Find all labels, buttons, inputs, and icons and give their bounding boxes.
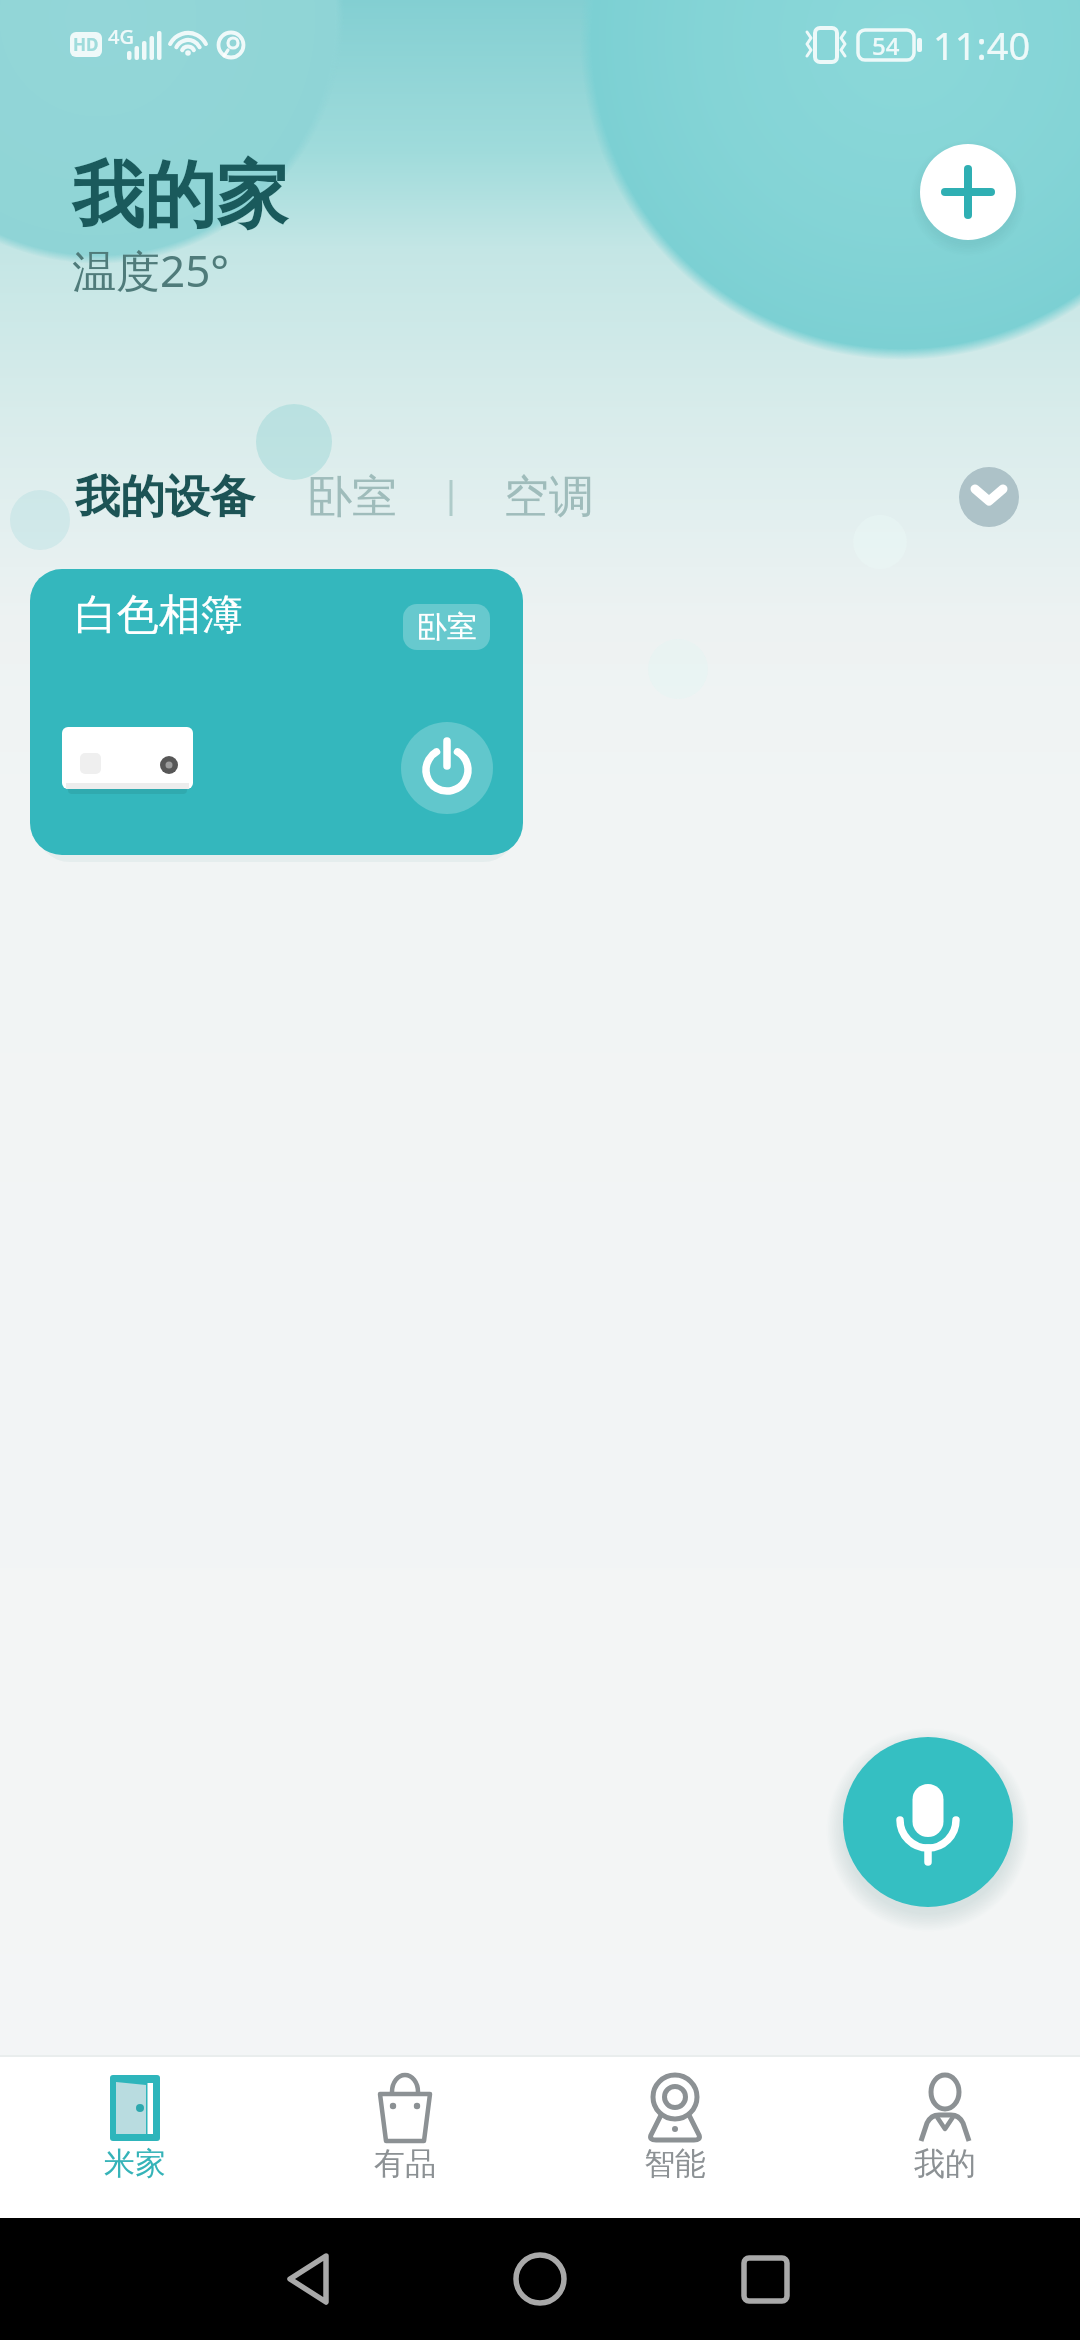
button[interactable]: [959, 467, 1019, 527]
button[interactable]: 空调: [493, 462, 603, 532]
button[interactable]: [440, 2218, 640, 2340]
staticText: 米家: [104, 2144, 166, 2183]
button[interactable]: 我的: [810, 2055, 1080, 2218]
staticText: 我的家: [72, 151, 288, 242]
button[interactable]: 米家: [0, 2055, 270, 2218]
button[interactable]: 智能: [540, 2055, 810, 2218]
button[interactable]: 白色相簿: [30, 569, 523, 855]
staticText: 卧室: [417, 608, 477, 646]
button[interactable]: 有品: [270, 2055, 540, 2218]
button[interactable]: [665, 2218, 865, 2340]
staticText: 54: [872, 29, 900, 62]
button[interactable]: 卧室: [296, 462, 406, 532]
staticText: 温度25°: [72, 240, 230, 300]
staticText: 白色相簿: [75, 589, 243, 642]
staticText: 卧室: [307, 469, 397, 526]
staticText: HD: [73, 33, 99, 56]
button[interactable]: [208, 2218, 408, 2340]
staticText: 4G: [108, 23, 134, 50]
button[interactable]: [920, 144, 1016, 240]
button[interactable]: [843, 1737, 1013, 1907]
staticText: 11:40: [933, 19, 1031, 71]
button[interactable]: 我的设备: [64, 462, 264, 532]
staticText: 空调: [504, 469, 594, 526]
button[interactable]: [401, 722, 493, 814]
staticText: 智能: [644, 2144, 706, 2183]
staticText: 我的: [914, 2144, 976, 2183]
staticText: 有品: [374, 2144, 436, 2183]
staticText: 我的设备: [75, 469, 255, 526]
